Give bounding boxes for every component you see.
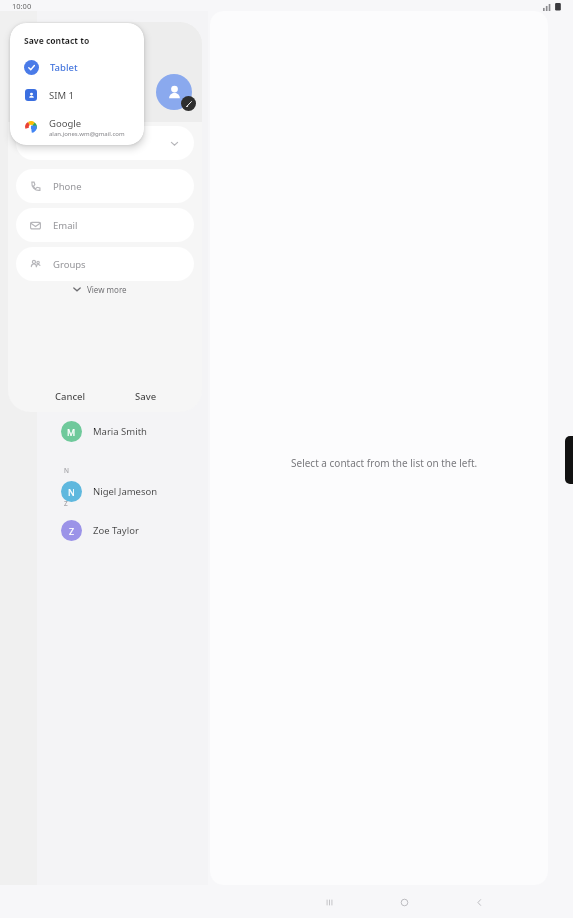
staticText: View more bbox=[87, 284, 127, 295]
staticText: alan.jones.wm@gmail.com bbox=[49, 130, 125, 138]
staticText: Groups bbox=[53, 258, 86, 271]
staticText: Select a contact from the list on the le… bbox=[291, 456, 478, 470]
button[interactable]: Save bbox=[112, 380, 180, 412]
staticText: Google bbox=[49, 117, 82, 130]
button[interactable]: Google bbox=[10, 111, 144, 143]
staticText: SIM 1 bbox=[49, 89, 74, 102]
button[interactable]: Edit photo bbox=[181, 96, 196, 111]
staticText: Save bbox=[135, 390, 157, 403]
staticText: 10:00 bbox=[12, 1, 32, 11]
staticText: Nigel Jameson bbox=[93, 485, 158, 498]
button[interactable]: SIM 1 bbox=[10, 81, 144, 109]
staticText: Cancel bbox=[55, 390, 86, 403]
button[interactable]: Contact photo bbox=[156, 74, 192, 110]
staticText: Tablet bbox=[50, 61, 78, 74]
button[interactable]: Cancel bbox=[36, 380, 104, 412]
staticText: Phone bbox=[53, 180, 82, 193]
button[interactable]: Tablet bbox=[10, 53, 144, 81]
button[interactable]: Phone bbox=[16, 169, 194, 203]
staticText: N bbox=[64, 466, 69, 475]
other: Expand name bbox=[169, 138, 180, 149]
button[interactable]: N bbox=[37, 475, 208, 507]
button[interactable]: Recents bbox=[308, 886, 350, 918]
staticText: N bbox=[68, 486, 75, 498]
other: Google bbox=[24, 120, 38, 134]
button[interactable]: Home bbox=[383, 886, 425, 918]
button[interactable]: Expand name bbox=[16, 126, 194, 160]
staticText: Z bbox=[64, 499, 68, 508]
button[interactable]: M bbox=[37, 415, 208, 447]
button[interactable]: Edge panel bbox=[565, 436, 573, 484]
button[interactable]: View more bbox=[72, 280, 127, 298]
staticText: Zoe Taylor bbox=[93, 524, 139, 537]
staticText: Maria Smith bbox=[93, 425, 147, 438]
staticText: Z bbox=[69, 525, 75, 537]
button[interactable]: Email bbox=[16, 208, 194, 242]
staticText: Email bbox=[53, 219, 78, 232]
staticText: Save contact to bbox=[24, 35, 90, 47]
staticText: M bbox=[67, 426, 76, 438]
button[interactable]: Z bbox=[37, 514, 208, 546]
button[interactable]: Groups bbox=[16, 247, 194, 281]
